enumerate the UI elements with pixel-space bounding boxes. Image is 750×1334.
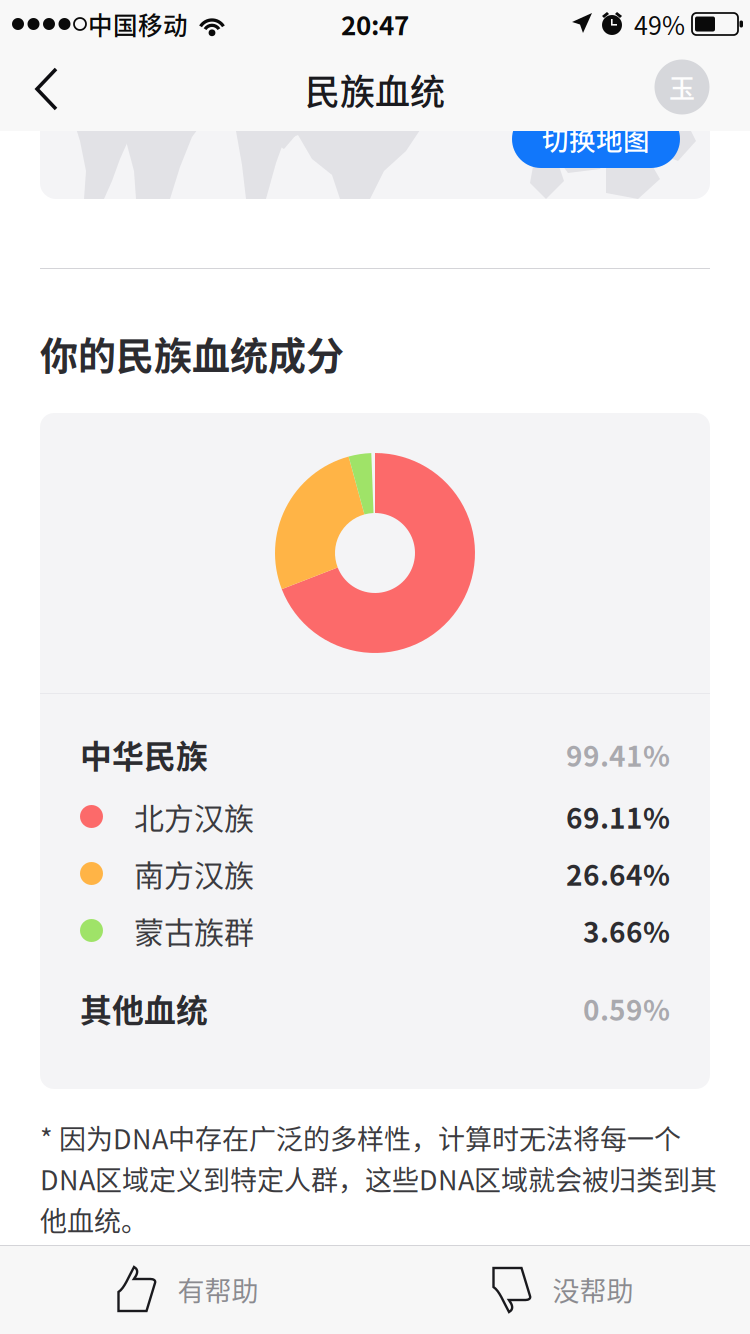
button[interactable]: Profile — [647, 52, 717, 122]
button[interactable]: 切换地图 — [512, 110, 680, 168]
staticText: 蒙古族群 — [134, 909, 254, 952]
staticText: 玉 — [669, 68, 695, 106]
staticText: 0.59% — [583, 988, 670, 1029]
button[interactable]: 有帮助 — [0, 1245, 375, 1334]
staticText: DNA区域定义到特定人群，这些DNA区域就会被归类到其 — [40, 1159, 717, 1198]
staticText: 民族血统 — [305, 64, 445, 115]
staticText: 26.64% — [566, 853, 670, 894]
staticText: 20:47 — [341, 5, 409, 43]
staticText: 有帮助 — [177, 1270, 258, 1309]
staticText: 南方汉族 — [134, 852, 254, 895]
staticText: 他血统。 — [40, 1200, 148, 1239]
staticText: 3.66% — [583, 910, 670, 951]
staticText: 69.11% — [566, 796, 670, 837]
staticText: * 因为DNA中存在广泛的多样性，计算时无法将每一个 — [40, 1118, 681, 1157]
staticText: 其他血统 — [80, 985, 208, 1031]
staticText: 中华民族 — [80, 731, 208, 777]
staticText: 49% — [634, 6, 685, 42]
button[interactable]: 没帮助 — [375, 1245, 750, 1334]
staticText: 切换地图 — [542, 120, 650, 158]
staticText: 你的民族血统成分 — [40, 325, 344, 380]
staticText: 北方汉族 — [134, 795, 254, 838]
button[interactable]: Back — [21, 57, 93, 121]
staticText: 没帮助 — [552, 1270, 633, 1309]
staticText: 中国移动 — [88, 6, 188, 42]
staticText: 99.41% — [566, 734, 670, 775]
